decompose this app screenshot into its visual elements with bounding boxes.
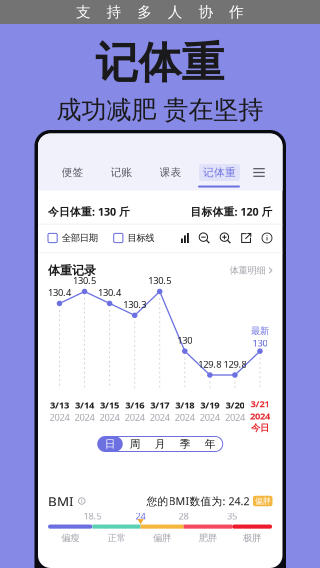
staticText: 今日体重: 130 斤: [48, 204, 130, 219]
staticText: 成功减肥 贵在坚持: [56, 94, 263, 126]
staticText: 支持多人协作: [76, 3, 244, 21]
button[interactable]: 年: [198, 436, 223, 451]
staticText: 18.5: [83, 510, 101, 522]
staticText: 130: [252, 337, 267, 349]
button[interactable]: 体重明细: [229, 265, 272, 276]
staticText: 2024: [200, 411, 220, 423]
staticText: 2024: [125, 411, 145, 423]
staticText: BMI: [48, 492, 74, 510]
staticText: 3/20: [225, 399, 244, 411]
staticText: 记账: [110, 166, 132, 179]
staticText: 28: [179, 510, 189, 522]
staticText: 记体重: [95, 37, 224, 89]
staticText: 极胖: [243, 532, 261, 544]
staticText: 肥胖: [199, 532, 217, 544]
button[interactable]: 周: [123, 436, 148, 451]
staticText: 130: [177, 334, 192, 346]
button[interactable]: 全部日期: [48, 232, 98, 244]
staticText: 周: [130, 437, 141, 450]
button[interactable]: Zoom in: [219, 232, 231, 244]
staticText: 便签: [61, 166, 83, 179]
staticText: 3/19: [200, 399, 219, 411]
staticText: 3/15: [100, 399, 119, 411]
staticText: 24: [136, 510, 146, 522]
staticText: 3/16: [125, 399, 144, 411]
staticText: 130.5: [73, 274, 96, 287]
button[interactable]: Info: [261, 232, 272, 243]
staticText: 偏胖: [153, 532, 171, 544]
staticText: 偏胖: [255, 496, 271, 506]
staticText: 正常: [107, 532, 125, 544]
staticText: 季: [180, 437, 191, 450]
staticText: 3/13: [50, 399, 69, 411]
staticText: 偏瘦: [61, 532, 79, 544]
button[interactable]: 课表: [146, 161, 195, 183]
button[interactable]: Zoom out: [198, 232, 210, 244]
staticText: 2024: [250, 410, 270, 422]
staticText: 2024: [100, 411, 120, 423]
staticText: 2024: [75, 411, 95, 423]
staticText: 目标线: [127, 232, 154, 244]
staticText: 您的BMI数值为: 24.2: [146, 494, 249, 508]
button[interactable]: Export: [240, 232, 252, 244]
staticText: 月: [155, 437, 166, 450]
staticText: 最新: [251, 325, 269, 337]
button[interactable]: 季: [173, 436, 198, 451]
button[interactable]: 目标线: [98, 232, 154, 244]
staticText: 2024: [49, 411, 69, 423]
staticText: 课表: [159, 166, 181, 179]
staticText: 体重记录: [48, 263, 96, 278]
staticText: 130.5: [148, 274, 171, 287]
staticText: 129.8: [223, 358, 246, 370]
staticText: 全部日期: [62, 232, 98, 244]
button[interactable]: 日: [98, 436, 123, 451]
staticText: 2024: [175, 411, 195, 423]
staticText: 今日: [251, 422, 269, 434]
staticText: 目标体重: 120 斤: [190, 204, 272, 219]
button[interactable]: Menu: [244, 161, 274, 183]
staticText: 35: [227, 510, 237, 522]
button[interactable]: 便签: [48, 161, 97, 183]
staticText: 日: [105, 437, 116, 450]
button[interactable]: 记账: [97, 161, 146, 183]
staticText: 3/14: [75, 399, 94, 411]
button[interactable]: 月: [148, 436, 173, 451]
staticText: 130.3: [123, 298, 146, 311]
staticText: 3/18: [175, 399, 194, 411]
staticText: 129.8: [198, 358, 221, 370]
staticText: 体重明细: [229, 265, 265, 276]
staticText: 130.4: [98, 286, 121, 299]
staticText: 2024: [225, 411, 245, 423]
button[interactable]: Chart style: [181, 233, 189, 243]
button[interactable]: 记体重: [195, 161, 244, 183]
button[interactable]: BMI info: [74, 497, 85, 505]
staticText: 3/21: [250, 397, 269, 410]
staticText: 记体重: [203, 166, 236, 179]
staticText: 2024: [150, 411, 170, 423]
staticText: 年: [205, 437, 216, 450]
staticText: 130.4: [48, 286, 71, 299]
staticText: 3/17: [150, 399, 169, 411]
